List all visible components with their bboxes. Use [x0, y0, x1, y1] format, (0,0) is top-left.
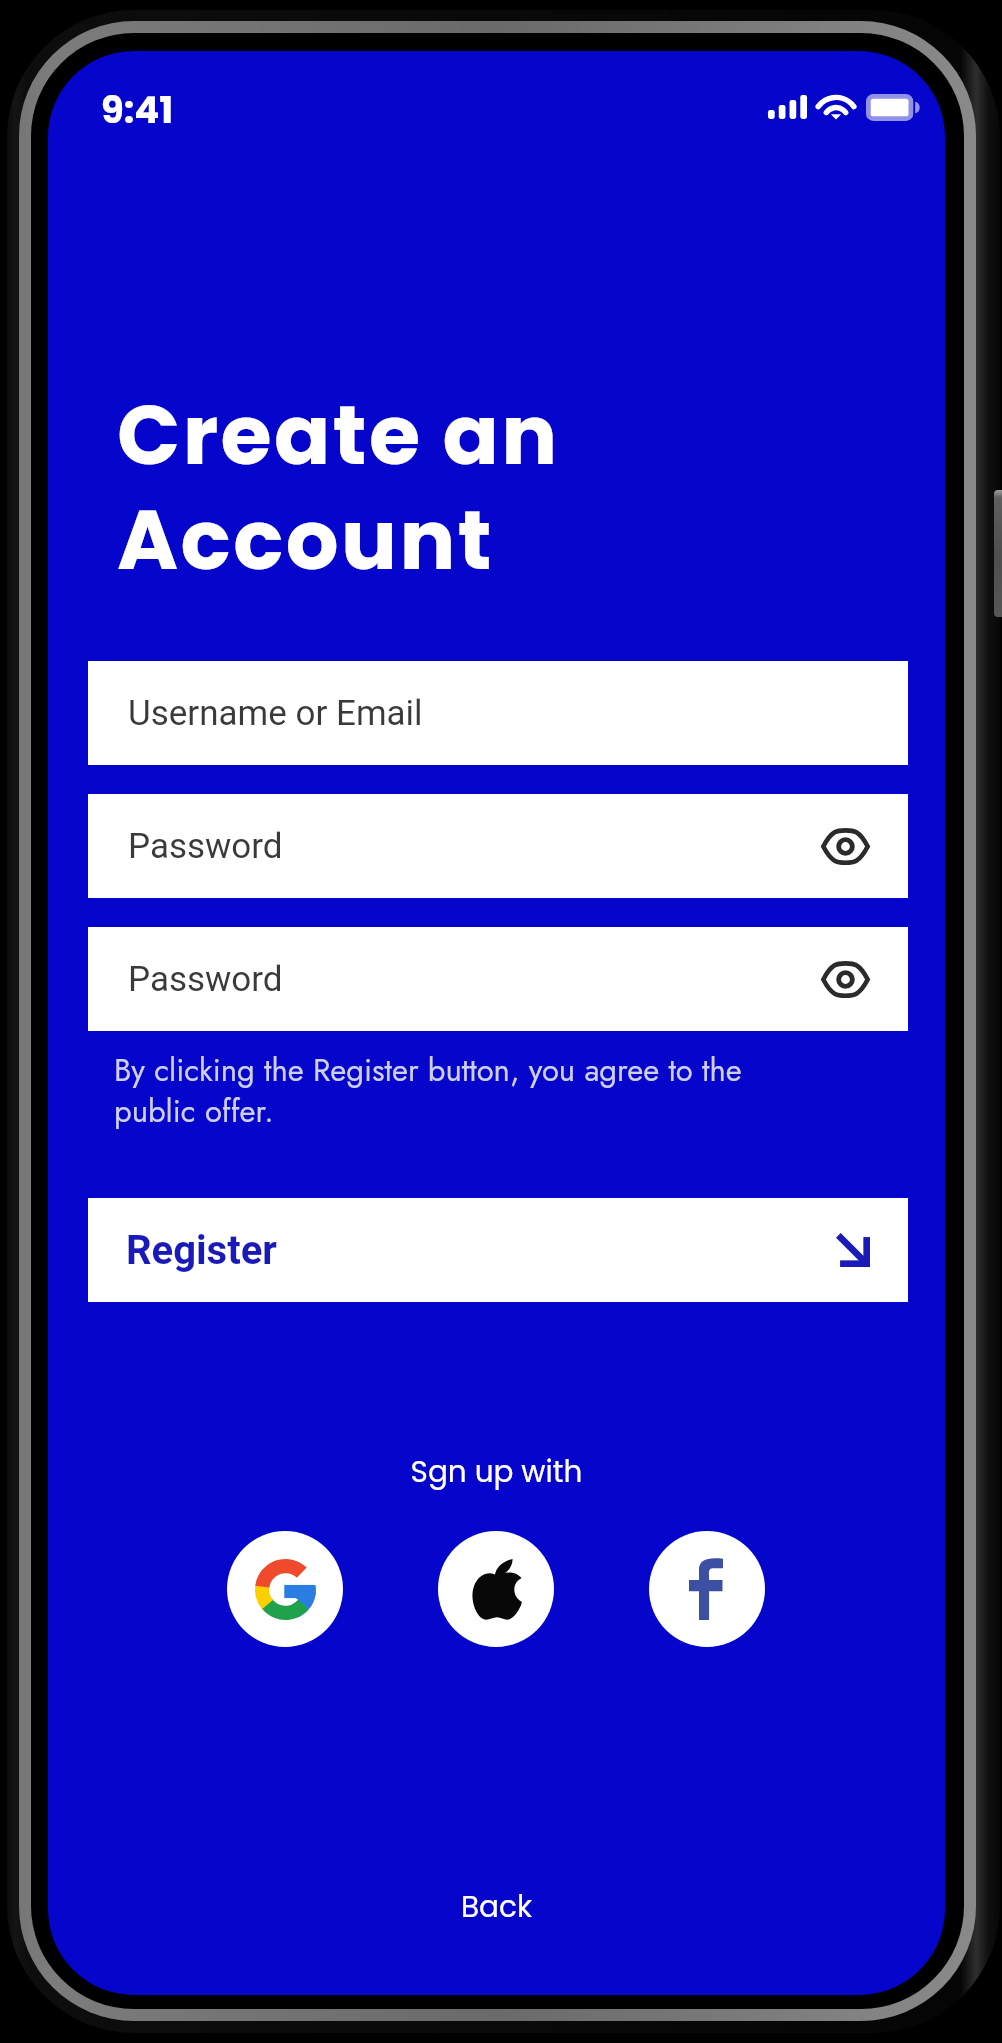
staticText: 9:41 — [101, 84, 174, 136]
button[interactable]: Back — [425, 1870, 569, 1943]
button[interactable]: Password — [88, 794, 908, 898]
staticText: Back — [461, 1886, 533, 1927]
staticText: By clicking the Register button, you agr… — [114, 1048, 742, 1133]
button[interactable]: Show password — [808, 809, 882, 883]
button[interactable]: Password — [88, 927, 908, 1031]
button[interactable]: Register — [88, 1198, 908, 1302]
button[interactable]: Sign up with Facebook — [649, 1531, 765, 1647]
button[interactable]: Username or Email — [88, 661, 908, 765]
button[interactable]: Sign up with Google — [227, 1531, 343, 1647]
staticText: Register — [126, 1227, 277, 1274]
staticText: Sgn up with — [48, 1451, 945, 1492]
button[interactable]: Show password — [808, 942, 882, 1016]
staticText: Create an Account — [117, 377, 560, 598]
button[interactable]: Sign up with Apple — [438, 1531, 554, 1647]
staticText: Password — [128, 826, 283, 867]
staticText: Username or Email — [128, 693, 423, 734]
staticText: Password — [128, 959, 283, 1000]
